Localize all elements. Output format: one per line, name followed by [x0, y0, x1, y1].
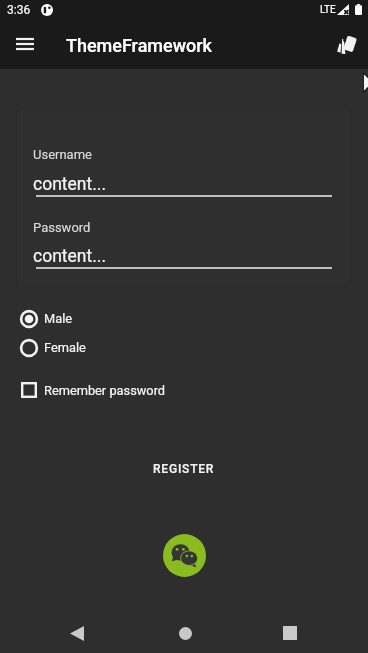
staticText: ThemeFramework	[66, 35, 213, 56]
staticText: Female	[44, 340, 86, 355]
button[interactable]: Home	[163, 611, 207, 653]
button[interactable]: Open navigation drawer	[5, 24, 45, 64]
staticText: content...	[33, 246, 107, 267]
staticText: Password	[33, 220, 91, 235]
staticText: Male	[44, 311, 73, 326]
staticText: Username	[33, 147, 92, 162]
button[interactable]: Change theme	[327, 24, 367, 64]
staticText: LTE	[320, 4, 336, 16]
button[interactable]: Female	[17, 333, 147, 362]
button[interactable]: Back	[55, 611, 99, 653]
button[interactable]: Recent apps	[268, 611, 312, 653]
button[interactable]: REGISTER	[140, 452, 228, 486]
button[interactable]: Share to WeChat	[163, 534, 206, 577]
staticText: 3:36	[7, 3, 31, 17]
staticText: content...	[33, 174, 107, 195]
button[interactable]: Male	[17, 304, 147, 333]
staticText: Remember password	[44, 383, 166, 398]
staticText: REGISTER	[153, 462, 215, 476]
button[interactable]: Remember password	[17, 377, 187, 403]
